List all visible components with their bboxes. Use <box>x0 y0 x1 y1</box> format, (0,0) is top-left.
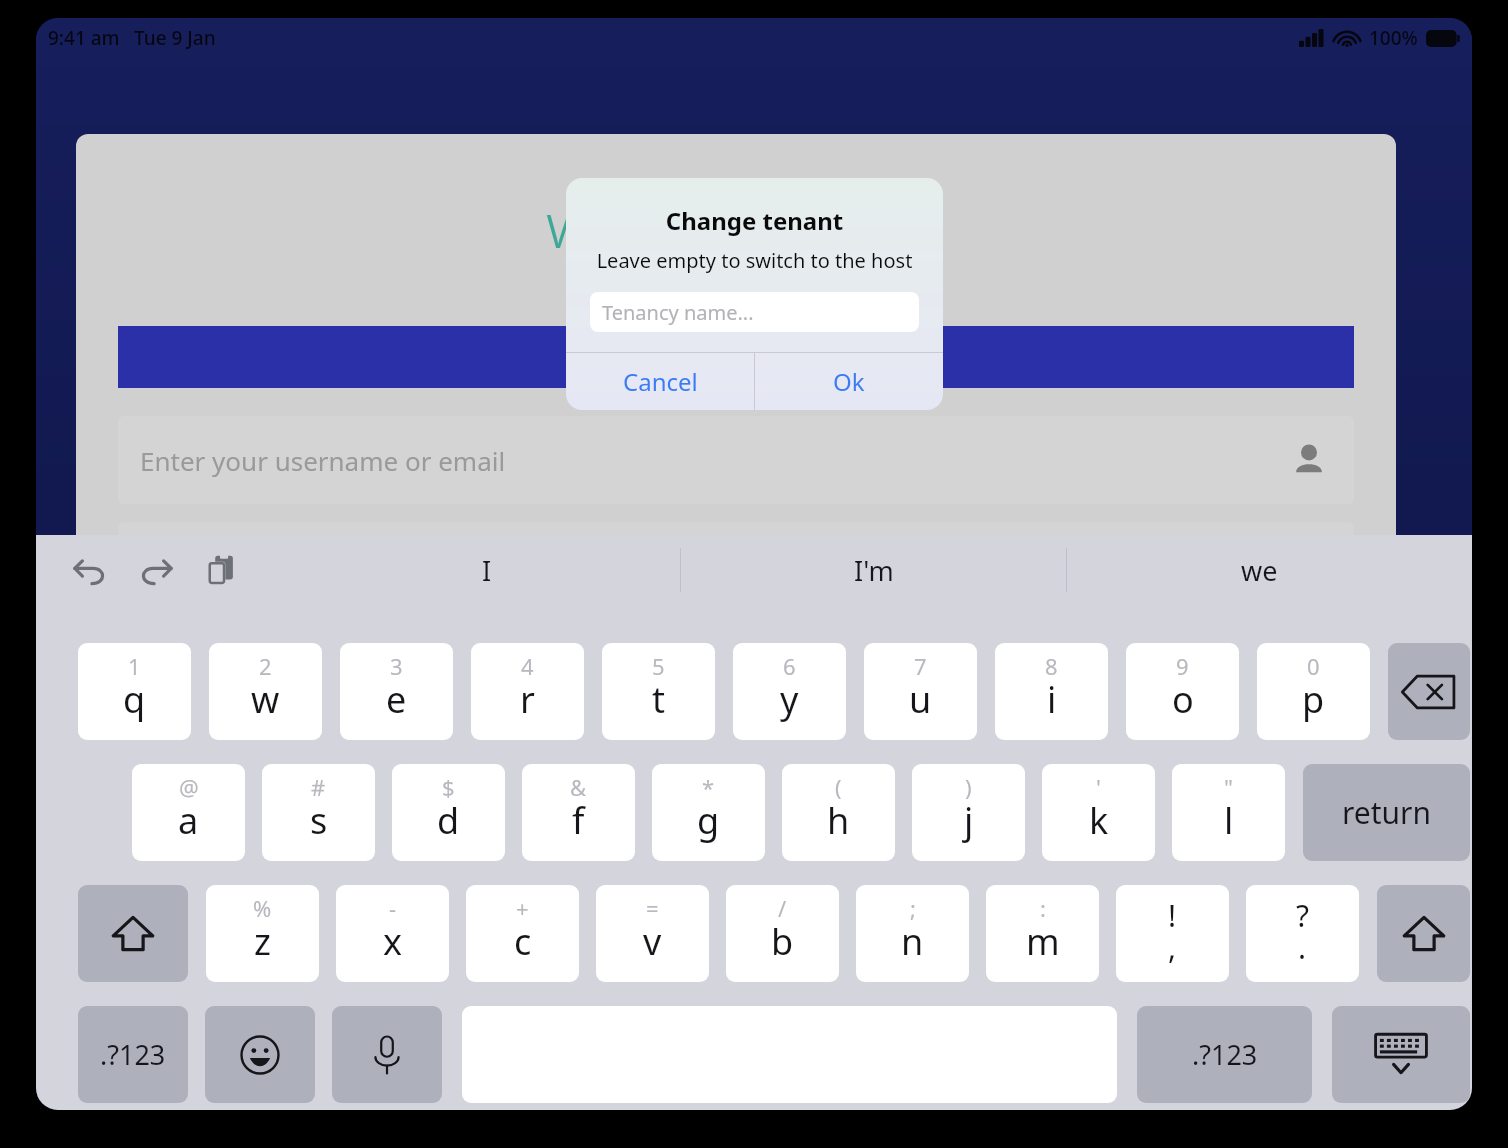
staticText: 9 <box>1176 651 1189 681</box>
staticText: d <box>437 796 460 845</box>
button[interactable]: " <box>1172 764 1285 861</box>
staticText: q <box>123 675 146 724</box>
staticText: j <box>964 796 974 845</box>
staticText: u <box>909 675 932 724</box>
staticText: k <box>1089 796 1109 845</box>
button[interactable]: 3 <box>340 643 453 740</box>
staticText: 7 <box>914 651 927 681</box>
staticText: 2 <box>259 651 272 681</box>
staticText: % <box>253 893 272 923</box>
button[interactable]: 6 <box>733 643 846 740</box>
staticText: I <box>482 552 492 589</box>
button[interactable]: ( <box>782 764 895 861</box>
button[interactable]: Emoji <box>205 1006 315 1103</box>
staticText: . <box>1298 927 1307 968</box>
staticText: 4 <box>521 651 534 681</box>
staticText: return <box>1342 792 1432 833</box>
button[interactable]: 7 <box>864 643 977 740</box>
staticText: ; <box>910 893 916 923</box>
button[interactable]: & <box>522 764 635 861</box>
staticText: " <box>1224 772 1233 802</box>
staticText: + <box>516 893 529 923</box>
button[interactable]: % <box>206 885 319 982</box>
button[interactable]: Dictation <box>332 1006 442 1103</box>
staticText: a <box>178 796 199 845</box>
button[interactable]: : <box>986 885 1099 982</box>
staticText: p <box>1302 675 1325 724</box>
staticText: Cancel <box>623 365 698 398</box>
button[interactable]: - <box>336 885 449 982</box>
button[interactable]: AU <box>1276 126 1316 165</box>
button[interactable]: return <box>1303 764 1470 861</box>
button[interactable]: Cancel <box>566 353 754 410</box>
button[interactable]: 2 <box>209 643 322 740</box>
staticText: : <box>1040 893 1046 923</box>
button[interactable]: ' <box>1042 764 1155 861</box>
button[interactable]: 4 <box>471 643 584 740</box>
staticText: v <box>643 917 662 966</box>
button[interactable]: Shift <box>78 885 188 982</box>
button[interactable]: 0 <box>1257 643 1370 740</box>
button[interactable]: = <box>596 885 709 982</box>
button[interactable]: ? <box>1246 885 1359 982</box>
button[interactable]: Enter your username or email <box>118 416 1354 504</box>
staticText: ( <box>835 772 842 802</box>
staticText: ' <box>1096 772 1101 802</box>
button[interactable]: Undo <box>62 542 118 598</box>
staticText: NZ <box>1340 132 1367 159</box>
button[interactable]: Redo <box>128 542 184 598</box>
staticText: / <box>778 893 787 923</box>
button[interactable]: .?123 <box>1137 1006 1312 1103</box>
staticText: .?123 <box>100 1036 166 1073</box>
button[interactable]: 9 <box>1126 643 1239 740</box>
button[interactable]: Paste <box>194 542 250 598</box>
staticText: Ok <box>833 365 865 398</box>
button[interactable]: we <box>1067 535 1452 605</box>
staticText: n <box>901 917 924 966</box>
staticText: 0 <box>1307 651 1320 681</box>
button[interactable]: Tenancy name... <box>590 292 919 332</box>
button[interactable]: / <box>726 885 839 982</box>
button[interactable]: Ok <box>755 353 943 410</box>
button[interactable]: ) <box>912 764 1025 861</box>
staticText: 6 <box>783 651 796 681</box>
button[interactable]: * <box>652 764 765 861</box>
button[interactable]: @ <box>132 764 245 861</box>
staticText: y <box>780 675 799 724</box>
staticText: Leave empty to switch to the host <box>566 247 943 274</box>
staticText: g <box>697 796 720 845</box>
button[interactable]: 1 <box>78 643 191 740</box>
staticText: 1 <box>128 651 141 681</box>
button[interactable]: + <box>466 885 579 982</box>
button[interactable]: I <box>294 535 680 605</box>
staticText: AU <box>1282 132 1310 159</box>
button[interactable]: 8 <box>995 643 1108 740</box>
button[interactable] <box>118 326 1354 388</box>
staticText: w <box>251 675 280 724</box>
staticText: m <box>1026 917 1060 966</box>
staticText: Tue 9 Jan <box>134 25 216 51</box>
staticText: s <box>310 796 328 845</box>
staticText: o <box>1172 675 1194 724</box>
staticText: b <box>771 917 794 966</box>
button[interactable]: Hide keyboard <box>1332 1006 1470 1103</box>
staticText: ) <box>965 772 972 802</box>
button[interactable]: NZ <box>1334 126 1373 165</box>
staticText: # <box>311 772 326 802</box>
staticText: z <box>254 917 271 966</box>
button[interactable]: Backspace <box>1388 643 1470 740</box>
button[interactable]: .?123 <box>78 1006 188 1103</box>
button[interactable]: I'm <box>681 535 1066 605</box>
staticText: Enter your username or email <box>140 443 506 478</box>
button[interactable]: $ <box>392 764 505 861</box>
button[interactable]: ! <box>1116 885 1229 982</box>
staticText: , <box>1168 927 1177 968</box>
button[interactable]: # <box>262 764 375 861</box>
button[interactable]: Shift <box>1377 885 1470 982</box>
button[interactable]: ; <box>856 885 969 982</box>
staticText: & <box>570 772 587 802</box>
button[interactable]: 5 <box>602 643 715 740</box>
staticText: .?123 <box>1192 1036 1258 1073</box>
staticText: * <box>702 772 715 802</box>
